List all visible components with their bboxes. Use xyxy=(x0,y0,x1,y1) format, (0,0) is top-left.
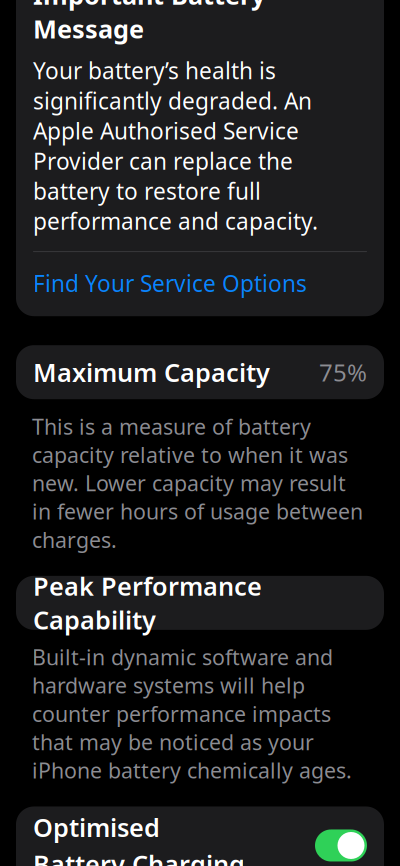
button[interactable]: Peak Performance Capability xyxy=(16,576,384,630)
staticText: Optimised xyxy=(33,810,160,844)
staticText: This is a measure of battery capacity re… xyxy=(32,412,363,554)
staticText: Find Your Service Options xyxy=(33,268,307,298)
staticText: Built-in dynamic software and hardware s… xyxy=(32,643,352,784)
staticText: Your battery’s health is significantly d… xyxy=(33,55,318,236)
staticText: Important Battery Message xyxy=(33,0,265,45)
button[interactable]: Maximum Capacity xyxy=(16,345,384,399)
button[interactable]: Optimised xyxy=(16,806,384,866)
staticText: Peak Performance Capability xyxy=(33,569,262,636)
staticText: Maximum Capacity xyxy=(33,355,270,389)
staticText: 75% xyxy=(319,356,367,388)
staticText: Battery Charging xyxy=(33,847,245,866)
button[interactable]: Find Your Service Options xyxy=(33,252,367,298)
